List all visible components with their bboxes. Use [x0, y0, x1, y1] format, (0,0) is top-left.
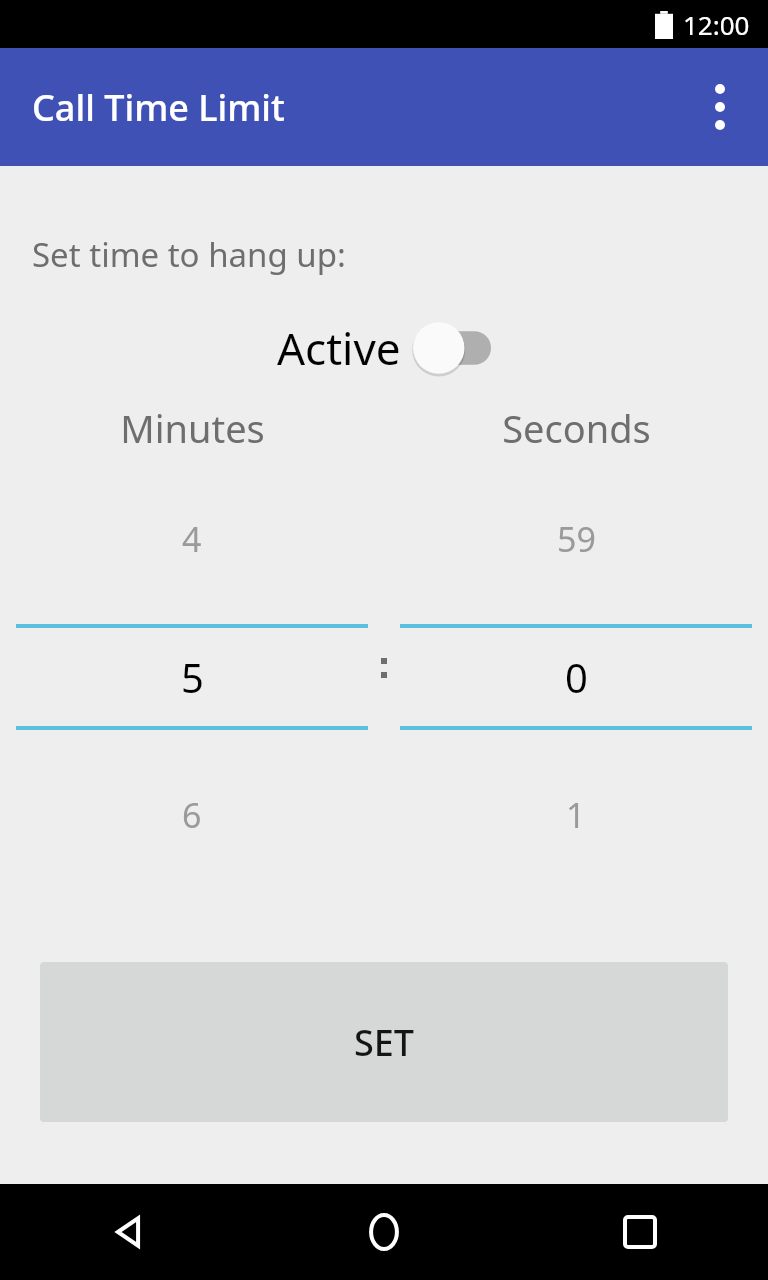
staticText: 12:00	[683, 7, 750, 42]
staticText: 6	[182, 792, 202, 838]
staticText: Set time to hang up:	[32, 232, 346, 277]
staticText: Active	[277, 318, 401, 378]
staticText: 4	[182, 516, 202, 562]
button[interactable]: Recent apps	[512, 1184, 768, 1280]
button[interactable]: SET	[40, 962, 728, 1122]
button[interactable]: Back	[0, 1184, 256, 1280]
staticText: Minutes	[120, 402, 265, 454]
button[interactable]: Active toggle	[413, 320, 491, 376]
button[interactable]: Minutes	[0, 402, 384, 838]
staticText: 1	[566, 792, 586, 838]
staticText: 5	[181, 650, 204, 704]
staticText: 59	[557, 516, 596, 562]
staticText: SET	[354, 1018, 415, 1067]
button[interactable]: Seconds	[384, 402, 768, 838]
staticText: 0	[565, 650, 588, 704]
staticText: Seconds	[502, 402, 651, 454]
staticText: Call Time Limit	[32, 83, 285, 132]
button[interactable]: More options	[684, 71, 756, 143]
button[interactable]: Active	[277, 318, 491, 378]
button[interactable]: Home	[256, 1184, 512, 1280]
